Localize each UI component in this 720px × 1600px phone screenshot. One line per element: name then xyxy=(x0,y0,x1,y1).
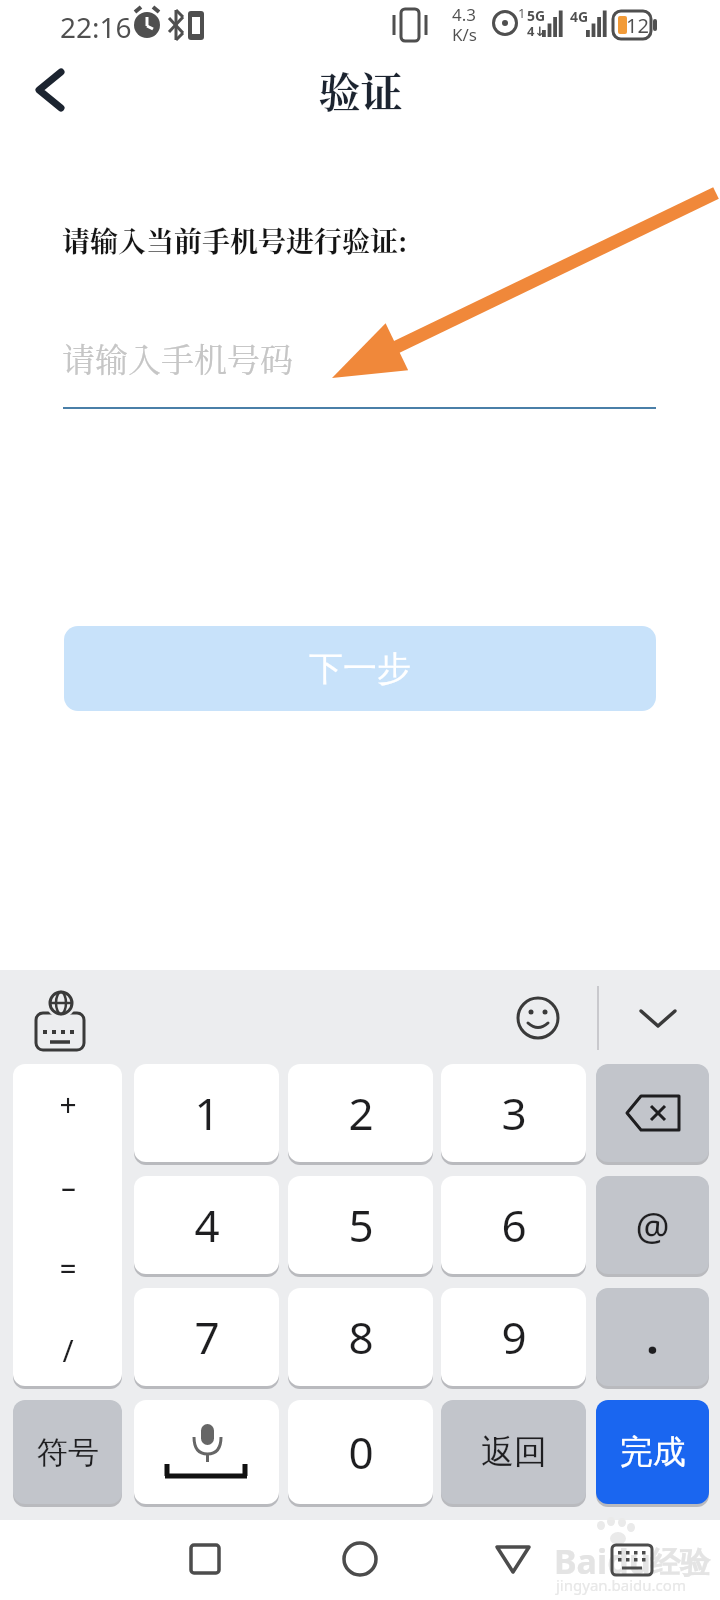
staticText: 下一步 xyxy=(309,647,411,690)
button[interactable] xyxy=(240,1520,480,1600)
staticText: 返回 xyxy=(481,1431,547,1473)
staticText: 8 xyxy=(348,1307,374,1367)
button[interactable] xyxy=(630,990,686,1046)
staticText: 1 xyxy=(518,4,526,22)
button[interactable]: 完成 xyxy=(596,1400,709,1504)
staticText: 4↓ xyxy=(527,22,546,40)
button[interactable] xyxy=(13,1064,122,1386)
staticText: – xyxy=(61,1166,76,1207)
staticText: 3 xyxy=(501,1083,527,1143)
staticText: 4G xyxy=(570,7,589,26)
button[interactable]: 6 xyxy=(441,1176,586,1274)
button[interactable]: 7 xyxy=(134,1288,279,1386)
staticText: 完成 xyxy=(620,1431,686,1473)
staticText: 7 xyxy=(194,1307,220,1367)
button[interactable]: @ xyxy=(596,1176,709,1274)
button[interactable]: 符号 xyxy=(13,1400,122,1504)
staticText: 验证 xyxy=(318,60,403,120)
staticText: Baidu xyxy=(554,1538,651,1584)
staticText: = xyxy=(59,1248,77,1289)
button[interactable]: 返回 xyxy=(441,1400,586,1504)
button[interactable] xyxy=(480,1520,720,1600)
button[interactable] xyxy=(596,1064,709,1162)
button[interactable]: 1 xyxy=(134,1064,279,1162)
staticText: @ xyxy=(635,1199,670,1251)
button[interactable]: 2 xyxy=(288,1064,433,1162)
staticText: 6 xyxy=(501,1195,527,1255)
staticText: 4.3 xyxy=(452,3,477,26)
button[interactable]: 5 xyxy=(288,1176,433,1274)
staticText: 经验 xyxy=(650,1544,710,1582)
staticText: 请输入当前手机号进行验证: xyxy=(62,220,408,260)
staticText: 符号 xyxy=(37,1433,99,1472)
staticText: 0 xyxy=(348,1422,374,1482)
button[interactable] xyxy=(0,1520,240,1600)
staticText: 1 xyxy=(194,1083,220,1143)
button[interactable]: 0 xyxy=(288,1400,433,1504)
button[interactable]: 8 xyxy=(288,1288,433,1386)
staticText: 4 xyxy=(194,1195,220,1255)
button[interactable] xyxy=(24,64,76,116)
staticText: 12 xyxy=(626,12,649,39)
staticText: 5G xyxy=(527,6,546,25)
button[interactable] xyxy=(28,988,92,1054)
button[interactable]: 3 xyxy=(441,1064,586,1162)
staticText: 9 xyxy=(501,1307,527,1367)
staticText: jingyan.baidu.com xyxy=(556,1575,686,1595)
button[interactable]: 下一步 xyxy=(64,626,656,711)
button[interactable]: . xyxy=(596,1288,709,1386)
staticText: 2 xyxy=(348,1083,374,1143)
button[interactable]: 4 xyxy=(134,1176,279,1274)
staticText: 22:16 xyxy=(60,8,132,46)
button[interactable] xyxy=(510,990,566,1046)
staticText: . xyxy=(646,1307,659,1367)
staticText: 请输入手机号码 xyxy=(62,334,293,381)
staticText: + xyxy=(59,1084,77,1125)
staticText: 5 xyxy=(348,1195,374,1255)
button[interactable] xyxy=(134,1400,279,1504)
staticText: / xyxy=(62,1330,74,1371)
staticText: K/s xyxy=(452,23,477,46)
button[interactable]: 9 xyxy=(441,1288,586,1386)
